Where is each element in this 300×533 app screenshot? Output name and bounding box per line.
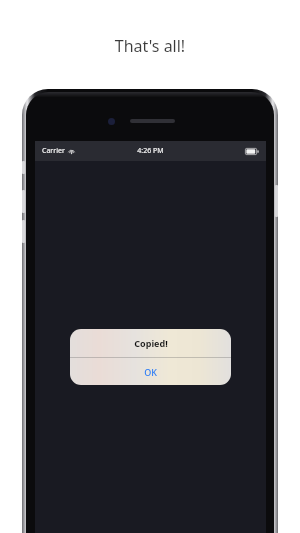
staticText: Copied! xyxy=(134,337,168,349)
staticText: That's all! xyxy=(0,35,300,57)
staticText: OK xyxy=(144,366,157,378)
other: Power xyxy=(275,185,278,217)
other: Volume up xyxy=(22,190,25,213)
other: Volume down xyxy=(22,220,25,243)
other: Silent switch xyxy=(22,161,25,174)
button[interactable]: OK xyxy=(70,358,231,385)
staticText: 4:26 PM xyxy=(137,146,164,156)
staticText: Carrier xyxy=(42,146,65,156)
